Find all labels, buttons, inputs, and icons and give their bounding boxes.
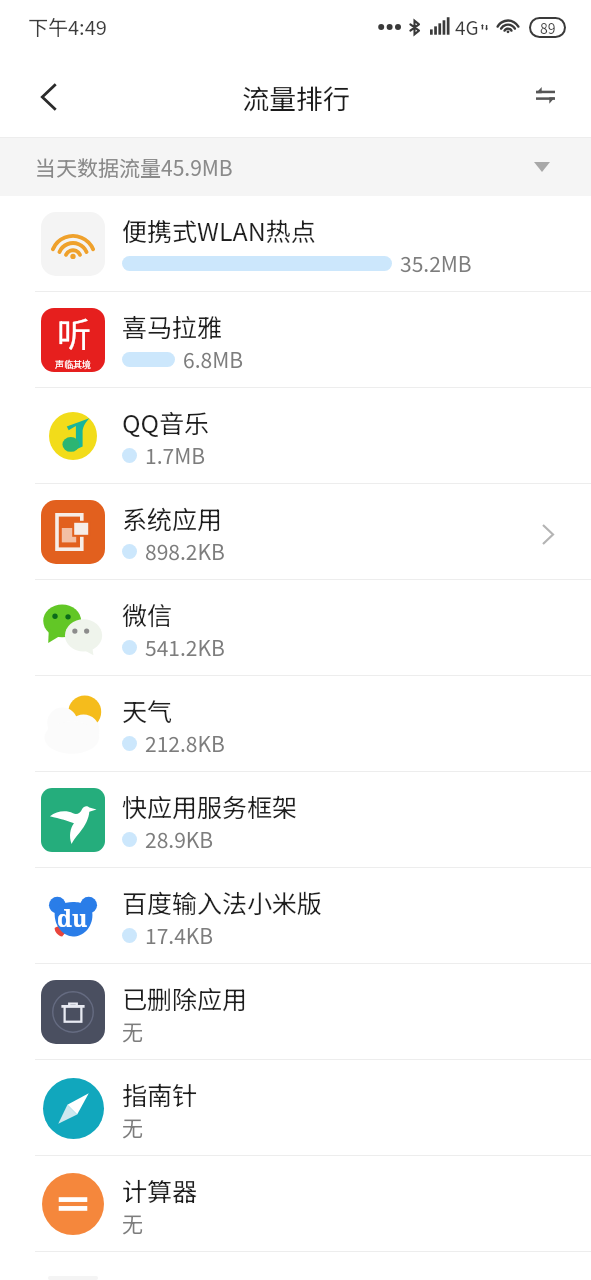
staticText: 系统应用 xyxy=(122,500,223,536)
staticText: du xyxy=(57,902,88,933)
staticText: 听 xyxy=(57,308,91,357)
staticText: 1.7MB xyxy=(145,440,205,470)
staticText: 天气 xyxy=(122,692,173,728)
button[interactable]: 快应用服务框架 xyxy=(0,772,591,867)
staticText: 流量排行 xyxy=(242,78,350,117)
staticText: 无 xyxy=(122,1016,143,1046)
button[interactable]: 指南针 xyxy=(0,1060,591,1155)
staticText: 6.8MB xyxy=(183,344,243,374)
staticText: 声临其境 xyxy=(55,358,92,371)
button[interactable]: Sort xyxy=(509,57,591,137)
staticText: 当天数据流量45.9MB xyxy=(35,152,233,182)
staticText: 28.9KB xyxy=(145,824,214,854)
staticText: 指南针 xyxy=(122,1076,198,1112)
staticText: 17.4KB xyxy=(145,920,214,950)
staticText: 212.8KB xyxy=(145,728,225,758)
button[interactable]: Back xyxy=(0,57,96,137)
staticText: 已删除应用 xyxy=(122,980,248,1016)
button[interactable]: 便携式WLAN热点 xyxy=(0,196,591,291)
staticText: 4G xyxy=(455,13,479,41)
button[interactable]: du xyxy=(0,868,591,963)
staticText: 541.2KB xyxy=(145,632,225,662)
staticText: 下午4:49 xyxy=(28,12,107,41)
button[interactable]: QQ音乐 xyxy=(0,388,591,483)
staticText: 898.2KB xyxy=(145,536,225,566)
staticText: 微信 xyxy=(122,596,173,632)
button[interactable]: 计算器 xyxy=(0,1156,591,1251)
staticText: 无 xyxy=(122,1112,143,1142)
button[interactable]: 天气 xyxy=(0,676,591,771)
staticText: 快应用服务框架 xyxy=(122,788,298,824)
button[interactable]: 系统应用 xyxy=(0,484,591,579)
staticText: 便携式WLAN热点 xyxy=(122,212,316,248)
staticText: 89 xyxy=(540,19,556,35)
button[interactable]: Select data range xyxy=(0,137,591,196)
staticText: 无 xyxy=(122,1208,143,1238)
staticText: 喜马拉雅 xyxy=(122,308,223,344)
staticText: QQ音乐 xyxy=(122,404,210,440)
button[interactable]: 微信 xyxy=(0,580,591,675)
staticText: 百度输入法小米版 xyxy=(122,884,323,920)
staticText: 35.2MB xyxy=(400,248,472,278)
button[interactable]: 听 xyxy=(0,292,591,387)
staticText: 计算器 xyxy=(122,1172,198,1208)
button[interactable]: 已删除应用 xyxy=(0,964,591,1059)
